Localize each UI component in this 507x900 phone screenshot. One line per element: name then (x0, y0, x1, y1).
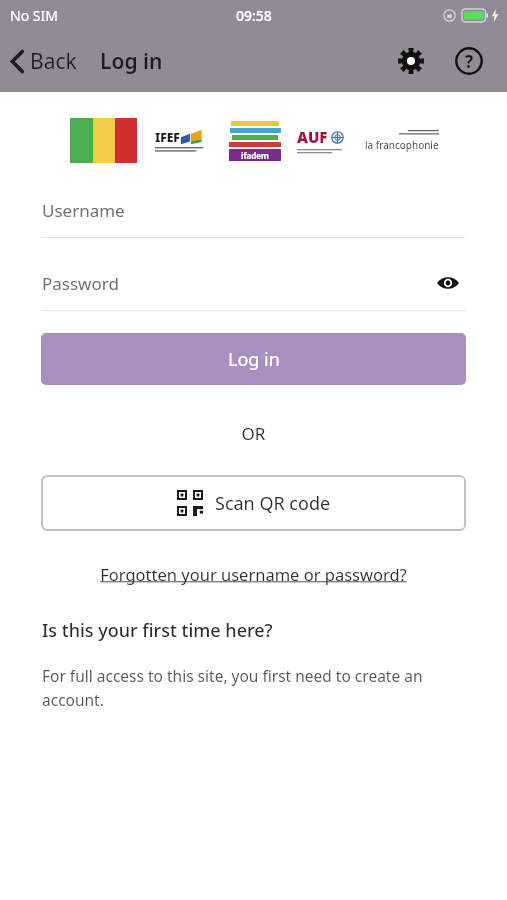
staticText: Log in (100, 47, 163, 76)
button[interactable]: Show password (431, 266, 465, 300)
button[interactable]: Username (42, 193, 465, 238)
staticText: AUF (297, 127, 328, 147)
button[interactable]: Back (10, 47, 77, 76)
button[interactable]: Forgotten your username or password? (0, 563, 507, 585)
button[interactable]: Scan QR code (41, 475, 466, 531)
staticText: Password (42, 272, 119, 295)
staticText: IFEF (155, 129, 180, 145)
staticText: Scan QR code (215, 491, 331, 516)
staticText: OR (0, 422, 507, 445)
button[interactable]: Password (42, 266, 465, 311)
staticText: Back (30, 47, 77, 76)
button[interactable]: Help (449, 41, 489, 81)
staticText: la francophonie (365, 138, 439, 152)
staticText: Is this your first time here? (42, 618, 273, 643)
button[interactable]: Log in (41, 333, 466, 385)
staticText: 09:58 (236, 6, 272, 25)
staticText: For full access to this site, you first … (42, 665, 465, 710)
staticText: ifadem (241, 150, 269, 161)
button[interactable]: Settings (391, 41, 431, 81)
staticText: Log in (228, 347, 280, 372)
staticText: Username (42, 199, 125, 222)
staticText: No SIM (10, 6, 58, 25)
staticText: ? (465, 50, 474, 73)
